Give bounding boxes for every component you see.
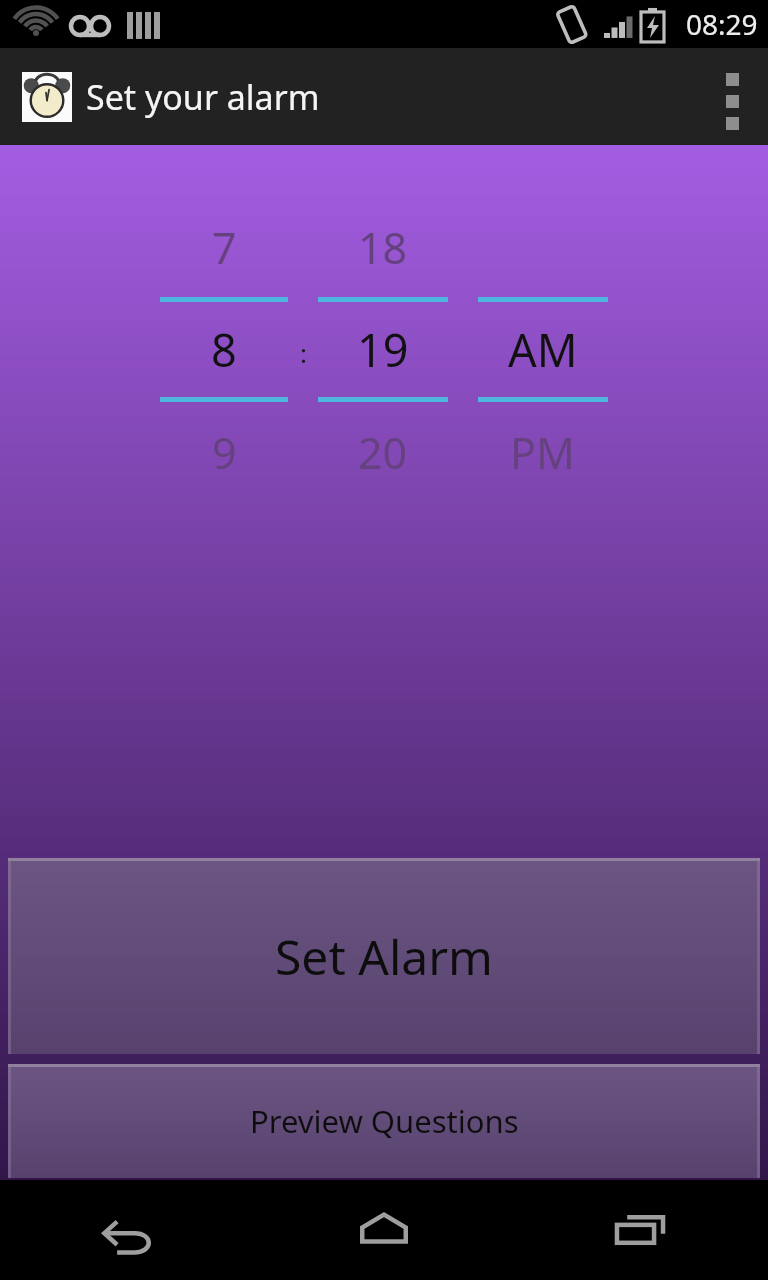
button[interactable]: 7 bbox=[160, 197, 288, 297]
button[interactable]: More options bbox=[696, 48, 768, 145]
staticText: 18 bbox=[358, 218, 408, 277]
staticText: 19 bbox=[357, 319, 409, 380]
staticText: : bbox=[300, 335, 307, 370]
staticText: PM bbox=[510, 423, 576, 482]
staticText: 9 bbox=[212, 423, 237, 482]
button[interactable]: AM bbox=[478, 302, 608, 397]
button[interactable] bbox=[478, 197, 608, 297]
button[interactable]: Set Alarm bbox=[8, 858, 760, 1054]
button[interactable]: Back bbox=[0, 1180, 256, 1280]
button[interactable]: PM bbox=[478, 402, 608, 502]
button[interactable]: 8 bbox=[160, 302, 288, 397]
button[interactable]: Home bbox=[256, 1180, 512, 1280]
staticText: 08:29 bbox=[686, 5, 758, 43]
button[interactable]: Recent apps bbox=[512, 1180, 768, 1280]
staticText: Set Alarm bbox=[275, 924, 493, 989]
staticText: AM bbox=[508, 319, 578, 380]
button[interactable]: 9 bbox=[160, 402, 288, 502]
staticText: 20 bbox=[358, 423, 408, 482]
button[interactable]: Preview Questions bbox=[8, 1064, 760, 1178]
staticText: Preview Questions bbox=[250, 1100, 519, 1142]
staticText: 7 bbox=[212, 218, 237, 277]
button[interactable]: 18 bbox=[318, 197, 448, 297]
staticText: Set your alarm bbox=[86, 74, 320, 120]
staticText: 8 bbox=[211, 319, 237, 380]
button[interactable]: 20 bbox=[318, 402, 448, 502]
button[interactable]: 19 bbox=[318, 302, 448, 397]
